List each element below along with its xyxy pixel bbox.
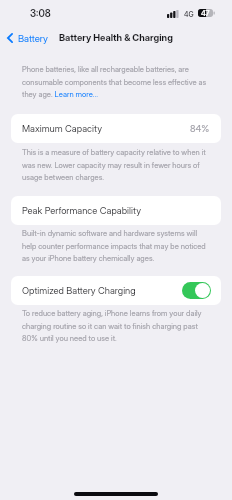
staticText: Battery Health & Charging [59,32,173,43]
staticText: Phone batteries, like all rechargeable b… [22,65,213,98]
staticText: 3:08 [30,7,51,19]
button[interactable]: Maximum Capacity [11,114,221,143]
staticText: Optimized Battery Charging [22,285,136,296]
staticText: Battery [18,33,48,45]
staticText: Maximum Capacity [22,123,103,134]
staticText: 47 [201,9,210,18]
staticText: Built-in dynamic software and hardware s… [22,229,213,262]
staticText: This is a measure of battery capacity re… [22,148,213,181]
button[interactable]: Battery [3,29,51,49]
button[interactable]: Peak Performance Capability [11,196,221,225]
staticText: 4G [184,10,194,18]
staticText: Peak Performance Capability [22,205,141,216]
staticText: To reduce battery aging, iPhone learns f… [22,309,213,342]
button[interactable]: Optimized Battery Charging [11,276,221,305]
staticText: 84% [190,123,210,134]
button[interactable]: Optimized Battery Charging toggle [182,282,211,299]
